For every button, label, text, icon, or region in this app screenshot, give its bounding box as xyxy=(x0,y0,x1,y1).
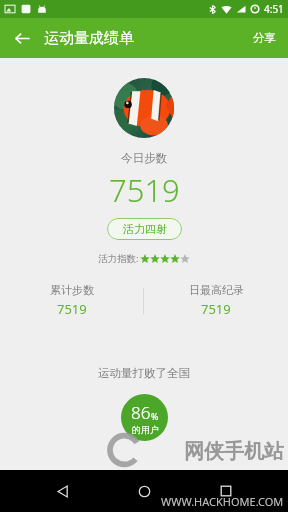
staticText: 活力指数: xyxy=(98,252,139,265)
staticText: 日最高纪录 xyxy=(189,283,244,297)
staticText: 的用户 xyxy=(132,424,159,435)
button[interactable]: Back xyxy=(6,22,38,54)
staticText: 7519 xyxy=(201,300,231,318)
staticText: 分享 xyxy=(253,31,276,45)
staticText: 7519 xyxy=(109,169,180,211)
staticText: 7519 xyxy=(57,300,87,318)
button[interactable]: 分享 xyxy=(241,23,288,53)
button[interactable]: 累计步数 xyxy=(0,283,143,318)
staticText: 运动量成绩单 xyxy=(44,29,134,48)
staticText: 今日步数 xyxy=(121,151,167,165)
staticText: 网侠手机站 xyxy=(184,439,284,464)
button[interactable]: 日最高纪录 xyxy=(144,283,288,318)
staticText: 累计步数 xyxy=(50,283,94,297)
button[interactable]: Back xyxy=(42,471,82,511)
button[interactable]: Home xyxy=(124,471,164,511)
staticText: 运动量打败了全国 xyxy=(98,366,190,380)
staticText: 86 xyxy=(131,401,151,424)
button[interactable]: 活力四射 xyxy=(107,218,182,240)
staticText: 4:51 xyxy=(264,2,284,16)
staticText: % xyxy=(151,410,159,422)
staticText: WWW.HACKHOME.COM xyxy=(161,494,284,509)
staticText: 活力四射 xyxy=(123,222,167,236)
button[interactable]: Profile photo xyxy=(114,78,174,138)
button[interactable]: Recent apps xyxy=(206,471,246,511)
